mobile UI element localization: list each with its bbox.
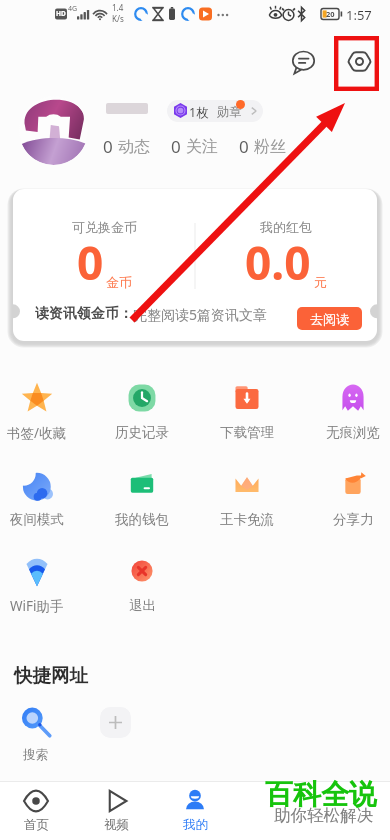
button[interactable]: 搜索: [8, 702, 64, 764]
button[interactable]: [94, 547, 190, 609]
staticText: 20: [326, 9, 335, 19]
staticText: HD: [56, 9, 66, 18]
staticText: 0.0: [245, 231, 311, 294]
staticText: 金币: [106, 274, 132, 290]
staticText: 0: [239, 135, 249, 158]
staticText: 王卡免流: [220, 511, 274, 528]
button[interactable]: [199, 461, 295, 523]
button[interactable]: Avatar: [19, 96, 88, 165]
staticText: 我的钱包: [115, 511, 169, 528]
button[interactable]: 0: [239, 135, 286, 158]
staticText: 书签/收藏: [7, 424, 67, 442]
button[interactable]: [305, 374, 390, 436]
staticText: 下载管理: [220, 424, 274, 441]
staticText: 粉丝: [254, 137, 286, 157]
button[interactable]: [94, 374, 190, 436]
staticText: 退出: [129, 597, 156, 614]
button[interactable]: [155, 782, 235, 840]
staticText: 去阅读: [310, 311, 349, 327]
button[interactable]: 0: [171, 135, 218, 158]
button[interactable]: Settings: [339, 41, 379, 81]
staticText: 完整阅读5篇资讯文章: [133, 305, 268, 324]
staticText: 我的: [183, 817, 208, 833]
staticText: 动态: [118, 137, 150, 157]
button[interactable]: [0, 374, 85, 436]
staticText: 无痕浏览: [326, 424, 380, 441]
button[interactable]: 去阅读: [297, 307, 362, 330]
staticText: 助你轻松解决: [274, 805, 373, 826]
staticText: 首页: [24, 817, 49, 833]
staticText: 夜间模式: [10, 511, 64, 528]
staticText: 搜索: [23, 747, 48, 763]
button[interactable]: [195, 189, 377, 299]
button[interactable]: [94, 461, 190, 523]
staticText: 1枚: [189, 104, 209, 121]
button[interactable]: 1枚: [167, 100, 263, 122]
staticText: 0: [77, 231, 104, 294]
button[interactable]: Feedback: [283, 42, 323, 82]
staticText: K/s: [112, 13, 124, 24]
staticText: 关注: [186, 137, 218, 157]
button[interactable]: [0, 547, 85, 609]
staticText: 分享力: [333, 511, 374, 528]
button[interactable]: [13, 189, 195, 299]
button[interactable]: Add shortcut: [100, 707, 131, 738]
staticText: 视频: [104, 817, 129, 833]
button[interactable]: [305, 461, 390, 523]
staticText: 历史记录: [115, 424, 169, 441]
button[interactable]: [76, 782, 156, 840]
staticText: 快捷网址: [14, 664, 88, 687]
staticText: 勋章: [217, 104, 242, 120]
staticText: 0: [103, 135, 113, 158]
staticText: 元: [314, 274, 327, 290]
staticText: 可兑换金币: [72, 219, 137, 235]
staticText: 4G: [68, 4, 78, 14]
button[interactable]: [0, 782, 76, 840]
staticText: 读资讯领金币：: [35, 305, 133, 323]
button[interactable]: 0: [103, 135, 150, 158]
staticText: WiFi助手: [10, 597, 64, 615]
staticText: 1:57: [346, 6, 372, 24]
staticText: 0: [171, 135, 181, 158]
button[interactable]: [199, 374, 295, 436]
staticText: 百科全说: [265, 777, 377, 812]
staticText: 我的红包: [260, 219, 312, 235]
button[interactable]: [0, 461, 85, 523]
staticText: 1.4: [112, 2, 124, 13]
